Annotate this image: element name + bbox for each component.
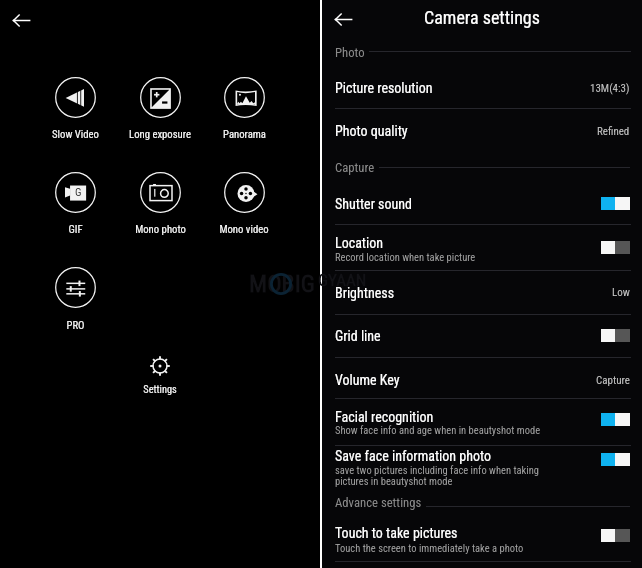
staticText: Shutter sound [335, 196, 413, 212]
button[interactable]: Settings [140, 354, 180, 378]
staticText: Slow Video [52, 128, 99, 141]
staticText: GIF [68, 223, 83, 236]
staticText: Low [612, 286, 630, 299]
button[interactable]: Switch off [601, 329, 630, 342]
button[interactable]: G [30, 169, 120, 238]
button[interactable]: Slow Video [30, 74, 120, 143]
button[interactable]: Save face information photo [322, 443, 642, 467]
button[interactable]: Location [322, 230, 642, 254]
button[interactable]: Long exposure [115, 74, 205, 143]
button[interactable]: PRO [30, 264, 120, 334]
button[interactable]: Switch off [601, 241, 630, 254]
staticText: Capture [335, 160, 375, 175]
button[interactable]: Switch on [601, 197, 630, 210]
staticText: Mono photo [135, 223, 186, 236]
staticText: Panorama [223, 128, 266, 141]
button[interactable]: Mono photo [115, 169, 205, 238]
staticText: Location [335, 235, 384, 251]
staticText: MOBIG [249, 270, 315, 298]
staticText: G [75, 186, 82, 199]
staticText: Volume Key [335, 372, 400, 388]
staticText: Brightness [335, 285, 395, 301]
button[interactable]: Switch on [601, 413, 630, 426]
button[interactable]: Photo quality [322, 118, 642, 142]
button[interactable]: Switch on [601, 453, 630, 466]
staticText: Photo [335, 45, 365, 60]
button[interactable]: Brightness [322, 280, 642, 304]
staticText: 13M(4:3) [590, 82, 630, 95]
button[interactable]: Panorama [199, 74, 289, 143]
button[interactable]: Back [7, 6, 35, 34]
staticText: Long exposure [129, 128, 191, 141]
button[interactable]: Facial recognition [322, 404, 642, 428]
button[interactable]: Mono video [199, 169, 289, 238]
button[interactable]: Picture resolution [322, 75, 642, 99]
staticText: Photo quality [335, 123, 408, 139]
staticText: save two pictures including face info wh… [335, 464, 539, 488]
staticText: Save face information photo [335, 448, 491, 464]
staticText: Advance settings [335, 495, 422, 510]
staticText: Picture resolution [335, 80, 433, 96]
staticText: Settings [143, 383, 177, 395]
staticText: Mono video [219, 223, 269, 236]
button[interactable]: Volume Key [322, 367, 642, 391]
button[interactable]: Switch off [601, 529, 630, 542]
staticText: Capture [596, 374, 630, 387]
staticText: Show face info and age when in beautysho… [335, 424, 541, 436]
button[interactable]: Back [329, 5, 357, 33]
staticText: PRO [66, 319, 85, 332]
staticText: GYAAN [318, 270, 367, 290]
button[interactable]: Grid line [322, 323, 642, 347]
staticText: Record location when take picture [335, 251, 476, 263]
staticText: Refined [597, 125, 630, 138]
button[interactable]: Shutter sound [322, 191, 642, 215]
staticText: Touch the screen to immediately take a p… [335, 542, 524, 554]
staticText: Camera settings [424, 7, 540, 28]
staticText: Facial recognition [335, 409, 434, 425]
staticText: Touch to take pictures [335, 525, 458, 541]
staticText: Grid line [335, 328, 381, 344]
button[interactable]: Touch to take pictures [322, 520, 642, 544]
